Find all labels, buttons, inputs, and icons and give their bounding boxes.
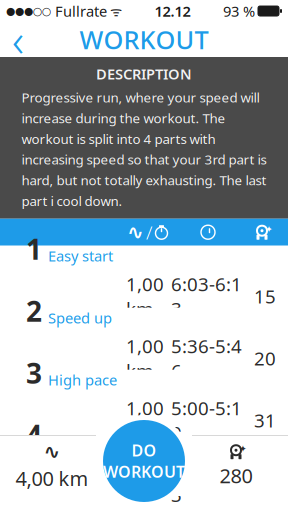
staticText: WORKOUT [79, 23, 208, 56]
staticText: 4 [26, 416, 42, 453]
button[interactable]: 2 [0, 308, 288, 370]
staticText: / [146, 220, 152, 245]
button[interactable]: 3 [0, 370, 288, 432]
staticText: 6:03-6:13 [171, 271, 242, 321]
staticText: 12.12 [154, 1, 190, 21]
staticText: Cooldown [48, 432, 118, 451]
staticText: ✦ [239, 443, 247, 454]
button[interactable]: Speed [180, 219, 236, 246]
staticText: 15 [254, 284, 276, 309]
button[interactable]: 1 [0, 246, 288, 308]
staticText: DESCRIPTION [96, 64, 192, 83]
staticText: 1 [26, 230, 42, 267]
staticText: 20 [254, 346, 276, 371]
staticText: ●●●○○ [6, 5, 51, 17]
button[interactable]: Points [236, 219, 288, 246]
staticText: 4,00 km [15, 465, 88, 492]
button[interactable]: 4 [0, 432, 288, 494]
staticText: Fullrate [51, 1, 107, 21]
staticText: 5:00-5:10 [171, 395, 242, 445]
button[interactable]: ∿ [0, 436, 104, 496]
staticText: 280 [219, 462, 252, 489]
staticText: 6:03-6:13 [171, 457, 242, 507]
staticText: Progressive run, where your speed will i… [21, 88, 266, 210]
button[interactable]: Distance and pace [116, 219, 180, 246]
button[interactable]: DO [98, 415, 190, 507]
staticText: 1,00 km [126, 395, 164, 445]
staticText: 1,00 km [126, 333, 164, 383]
staticText: High pace [48, 370, 117, 389]
staticText: ✦ [265, 224, 273, 234]
staticText: 5:36-5:46 [171, 333, 242, 383]
button[interactable]: ✦ [184, 436, 288, 496]
staticText: 31 [254, 408, 276, 433]
staticText: WORKOUT [103, 461, 185, 482]
staticText: ∿ [43, 440, 60, 463]
staticText: 1,00 km [126, 271, 164, 321]
staticText: ᯤ [107, 2, 122, 20]
staticText: DO [131, 440, 156, 461]
staticText: Easy start [48, 246, 113, 265]
staticText: 93 % [223, 1, 255, 21]
button[interactable]: Back [0, 22, 36, 56]
staticText: ‹ [12, 9, 24, 70]
staticText: Speed up [48, 308, 112, 327]
staticText: 3 [26, 354, 42, 391]
staticText: 1,00 km [126, 457, 164, 507]
staticText: 2 [26, 292, 42, 329]
staticText: ∿ [127, 221, 144, 244]
